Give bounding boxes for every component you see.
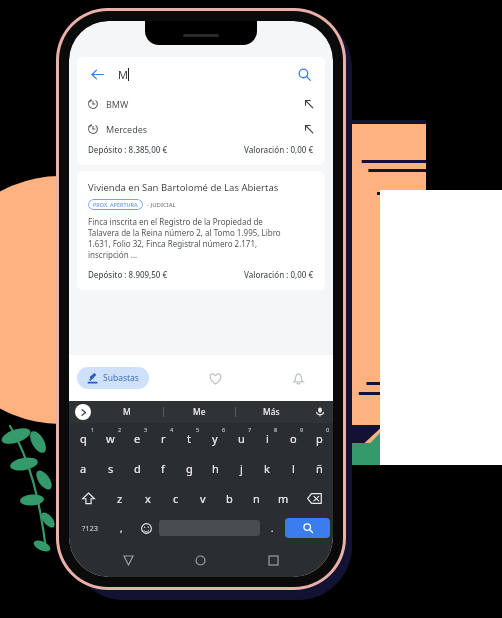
button[interactable]: , — [109, 513, 134, 543]
button[interactable]: d — [124, 453, 150, 483]
button[interactable]: BMW — [77, 91, 325, 116]
staticText: r — [161, 431, 166, 446]
staticText: Valoración : 0,00 € — [244, 144, 314, 155]
button[interactable]: Mayúsculas — [70, 483, 106, 513]
button[interactable]: f — [150, 453, 176, 483]
button[interactable]: b — [216, 483, 243, 513]
button[interactable]: r — [150, 423, 176, 453]
button[interactable]: Expandir — [75, 404, 91, 420]
button[interactable]: Atrás — [115, 547, 141, 573]
button[interactable]: Vivienda en San Bartolomé de Las Abierta… — [77, 171, 325, 290]
button[interactable]: Emoji — [134, 513, 159, 543]
staticText: n — [253, 491, 260, 506]
button[interactable]: Buscar — [285, 518, 330, 538]
staticText: 7 — [248, 426, 252, 433]
button[interactable]: Subastas — [77, 367, 149, 389]
staticText: M — [118, 67, 128, 82]
staticText: Subastas — [103, 372, 139, 384]
staticText: PROX. APERTURA — [93, 201, 138, 208]
button[interactable]: Favoritos — [198, 361, 232, 395]
staticText: Depósito : 8.909,50 € — [88, 269, 168, 280]
staticText: 8 — [274, 426, 278, 433]
button[interactable]: u — [228, 423, 254, 453]
button[interactable]: j — [228, 453, 254, 483]
staticText: a — [80, 461, 87, 476]
button[interactable]: q — [70, 423, 97, 453]
staticText: j — [240, 461, 243, 476]
staticText: Valoración : 0,00 € — [244, 269, 314, 280]
button[interactable]: Buscar — [294, 64, 314, 84]
staticText: ñ — [316, 461, 323, 476]
button[interactable]: i — [254, 423, 280, 453]
button[interactable]: Recientes — [260, 547, 286, 573]
staticText: 3 — [144, 426, 148, 433]
staticText: 6 — [222, 426, 226, 433]
staticText: p — [316, 431, 323, 446]
button[interactable]: M — [91, 406, 163, 418]
button[interactable]: o — [280, 423, 306, 453]
button[interactable]: c — [162, 483, 189, 513]
staticText: z — [117, 491, 123, 506]
staticText: b — [226, 491, 233, 506]
button[interactable]: Más — [236, 406, 307, 418]
staticText: l — [292, 461, 295, 476]
staticText: f — [161, 461, 165, 476]
staticText: i — [266, 431, 269, 446]
button[interactable]: h — [202, 453, 228, 483]
staticText: Mercedes — [106, 123, 148, 135]
staticText: v — [200, 491, 206, 506]
staticText: 9 — [300, 426, 304, 433]
button[interactable]: a — [70, 453, 97, 483]
button[interactable]: Atrás — [88, 65, 106, 83]
button[interactable]: Sita en calle Elena Aranguren 3 de Baras… — [77, 105, 325, 165]
staticText: Finca inscrita en el Registro de la Prop… — [88, 216, 281, 260]
button[interactable]: w — [97, 423, 124, 453]
button[interactable]: p — [306, 423, 332, 453]
button[interactable]: n — [243, 483, 270, 513]
staticText: Sita en calle Elena Aranguren 3 de Baras… — [88, 113, 255, 135]
button[interactable]: Voz — [307, 407, 333, 417]
button[interactable]: Inicio — [187, 547, 213, 573]
staticText: Me — [193, 406, 206, 418]
staticText: . — [271, 522, 274, 534]
staticText: x — [145, 491, 151, 506]
button[interactable]: k — [254, 453, 280, 483]
staticText: 1 — [91, 426, 95, 433]
staticText: BMW — [106, 98, 129, 110]
button[interactable]: ñ — [306, 453, 332, 483]
button[interactable]: v — [189, 483, 216, 513]
button[interactable]: y — [202, 423, 228, 453]
button[interactable]: Alertas — [281, 361, 315, 395]
staticText: h — [212, 461, 219, 476]
staticText: c — [173, 491, 179, 506]
staticText: Más — [263, 406, 280, 418]
button[interactable]: t — [176, 423, 202, 453]
button[interactable]: Borrar — [297, 483, 332, 513]
staticText: e — [134, 431, 141, 446]
staticText: m — [278, 491, 289, 506]
staticText: o — [290, 431, 297, 446]
button[interactable]: x — [134, 483, 162, 513]
button[interactable]: l — [280, 453, 306, 483]
staticText: Vivienda en San Bartolomé de Las Abierta… — [88, 181, 279, 194]
button[interactable]: Me — [164, 406, 235, 418]
staticText: g — [186, 461, 193, 476]
staticText: t — [187, 431, 191, 446]
button[interactable]: ?123 — [72, 513, 109, 543]
button[interactable]: m — [270, 483, 297, 513]
staticText: ?123 — [82, 523, 99, 533]
staticText: u — [238, 431, 245, 446]
button[interactable]: Mercedes — [77, 116, 325, 141]
button[interactable]: g — [176, 453, 202, 483]
button[interactable]: e — [124, 423, 150, 453]
button[interactable]: s — [97, 453, 124, 483]
staticText: 2 — [118, 426, 122, 433]
button[interactable]: z — [106, 483, 134, 513]
staticText: k — [264, 461, 270, 476]
button[interactable]: . — [260, 513, 285, 543]
staticText: 0 — [326, 426, 330, 433]
staticText: 4 — [170, 426, 174, 433]
staticText: , — [120, 522, 123, 534]
staticText: 5 — [196, 426, 200, 433]
